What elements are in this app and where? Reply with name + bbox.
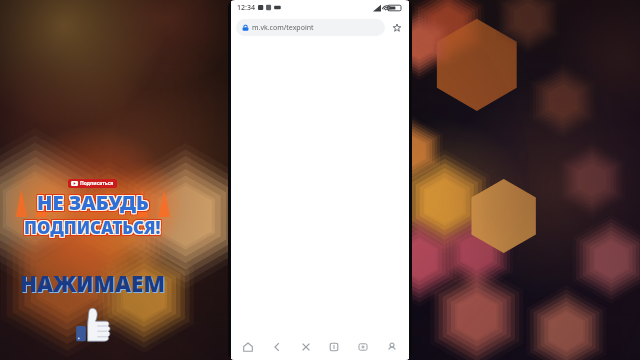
staticText: ПОДПИСАТЬСЯ! — [23, 217, 160, 240]
staticText: ПОДПИСАТЬСЯ! — [22, 214, 159, 237]
staticText: НЕ ЗАБУДЬ — [36, 188, 148, 215]
staticText: ПОДПИСАТЬСЯ! — [24, 216, 161, 239]
staticText: ПОДПИСАТЬСЯ! — [24, 214, 161, 237]
button[interactable]: Profile — [380, 335, 404, 359]
staticText: НЕ ЗАБУДЬ — [39, 187, 151, 214]
button[interactable]: New tab — [351, 335, 375, 359]
button[interactable]: Close — [294, 335, 318, 359]
staticText: m.vk.com/texpoint — [252, 23, 314, 33]
staticText: ПОДПИСАТЬСЯ! — [25, 215, 162, 238]
staticText: НЕ ЗАБУДЬ — [39, 191, 151, 218]
staticText: НЕ ЗАБУДЬ — [38, 188, 150, 215]
button[interactable]: Подписаться — [68, 179, 117, 188]
button[interactable]: Back — [265, 335, 289, 359]
staticText: НЕ ЗАБУДЬ — [38, 190, 150, 217]
staticText: ПОДПИСАТЬСЯ! — [25, 217, 162, 240]
staticText: ПОДПИСАТЬСЯ! — [23, 215, 160, 238]
staticText: НЕ ЗАБУДЬ — [37, 189, 149, 216]
staticText: ПОДПИСАТЬСЯ! — [22, 218, 159, 241]
button[interactable]: Bookmark — [390, 21, 404, 35]
staticText: НЕ ЗАБУДЬ — [39, 189, 151, 216]
staticText: ПОДПИСАТЬСЯ! — [26, 218, 163, 241]
staticText: НЕ ЗАБУДЬ — [35, 187, 147, 214]
button[interactable]: Home — [236, 335, 260, 359]
staticText: НЕ ЗАБУДЬ — [35, 191, 147, 218]
staticText: НЕ ЗАБУДЬ — [35, 189, 147, 216]
staticText: НЕ ЗАБУДЬ — [37, 191, 149, 218]
staticText: ПОДПИСАТЬСЯ! — [24, 218, 161, 241]
staticText: ПОДПИСАТЬСЯ! — [22, 216, 159, 239]
staticText: ПОДПИСАТЬСЯ! — [26, 214, 163, 237]
staticText: НАЖИМАЕМ — [21, 269, 166, 299]
button[interactable]: m.vk.com/texpoint — [236, 19, 385, 36]
staticText: НЕ ЗАБУДЬ — [37, 187, 149, 214]
staticText: НЕ ЗАБУДЬ — [36, 190, 148, 217]
staticText: Подписаться — [80, 180, 114, 187]
button[interactable]: Like — [70, 304, 114, 348]
staticText: НАЖИМАЕМ — [20, 268, 165, 298]
staticText: ПОДПИСАТЬСЯ! — [26, 216, 163, 239]
button[interactable]: Tabs — [322, 335, 346, 359]
staticText: 12:34 — [237, 3, 255, 13]
